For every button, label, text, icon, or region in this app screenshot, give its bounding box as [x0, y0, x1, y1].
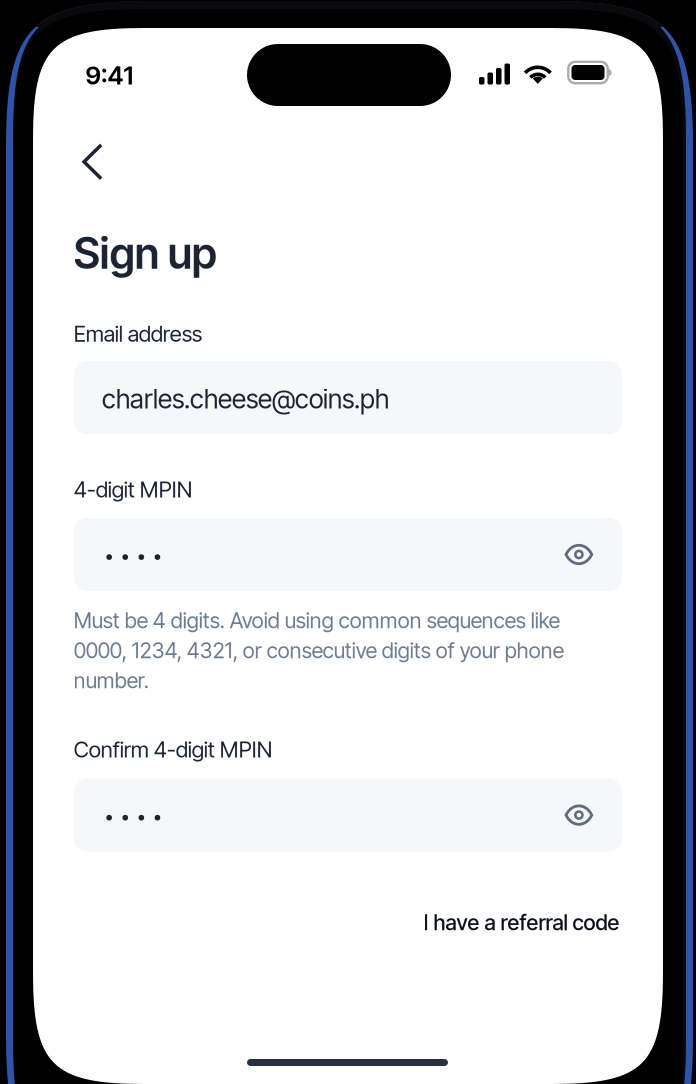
button[interactable]: charles.cheese@coins.ph	[74, 361, 622, 434]
staticText: Sign up	[74, 227, 217, 279]
button[interactable]: Back	[64, 133, 122, 191]
staticText: 4-digit MPIN	[74, 476, 193, 503]
staticText: 9:41	[86, 60, 134, 91]
staticText: Email address	[74, 320, 202, 347]
staticText: Must be 4 digits. Avoid using common seq…	[74, 607, 564, 693]
staticText: I have a referral code	[423, 910, 619, 935]
staticText: Confirm 4-digit MPIN	[74, 736, 273, 763]
button[interactable]	[74, 779, 622, 852]
staticText: charles.cheese@coins.ph	[102, 383, 389, 415]
button[interactable]: I have a referral code	[74, 900, 622, 944]
button[interactable]	[74, 518, 622, 591]
